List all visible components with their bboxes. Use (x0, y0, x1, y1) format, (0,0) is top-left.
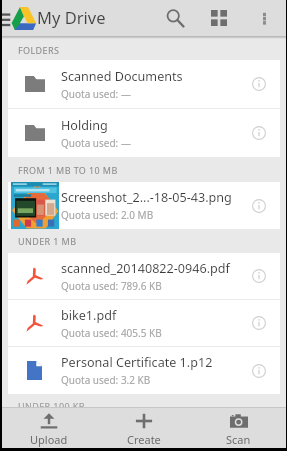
button[interactable]: Screenshot_2...-18-05-43.png (8, 182, 280, 229)
staticText: Quota used: 2.0 MB (61, 208, 154, 222)
staticText: Holding (61, 117, 108, 134)
button[interactable]: Scanned Documents (8, 60, 280, 108)
staticText: Quota used: 789.6 KB (61, 279, 162, 293)
button[interactable]: Holding (8, 109, 280, 157)
button[interactable]: More options (254, 0, 274, 36)
staticText: scanned_20140822-0946.pdf (61, 260, 230, 277)
button[interactable]: Search (165, 0, 185, 36)
staticText: Scan (226, 432, 251, 447)
staticText: Upload (30, 432, 68, 447)
button[interactable]: Grid view (209, 0, 229, 36)
button[interactable]: bike1.pdf (8, 300, 280, 346)
button[interactable]: Create (96, 408, 191, 448)
staticText: FOLDERS (18, 44, 60, 56)
staticText: My Drive (37, 6, 106, 28)
button[interactable]: File information (242, 60, 275, 108)
button[interactable]: File information (242, 253, 275, 299)
staticText: bike1.pdf (61, 307, 117, 324)
staticText: Quota used: — (61, 136, 131, 150)
staticText: Screenshot_2...-18-05-43.png (61, 189, 232, 206)
button[interactable]: File information (242, 182, 275, 229)
staticText: Quota used: 3.2 KB (61, 373, 151, 387)
button[interactable]: Navigation menu (2, 0, 11, 36)
button[interactable]: Personal Certificate 1.p12 (8, 347, 280, 394)
button[interactable]: File information (242, 300, 275, 346)
button[interactable]: scanned_20140822-0946.pdf (8, 253, 280, 299)
staticText: Scanned Documents (61, 68, 183, 85)
staticText: Personal Certificate 1.p12 (61, 354, 213, 371)
staticText: Quota used: — (61, 87, 131, 101)
staticText: UNDER 100 KB (18, 400, 85, 407)
staticText: Quota used: 405.5 KB (61, 326, 162, 340)
button[interactable]: File information (242, 109, 275, 157)
staticText: Create (127, 432, 161, 447)
button[interactable]: Scan (191, 408, 286, 448)
staticText: FROM 1 MB TO 10 MB (18, 164, 118, 176)
button[interactable]: Upload (2, 408, 96, 448)
button[interactable]: File information (242, 347, 275, 394)
staticText: UNDER 1 MB (18, 235, 77, 247)
